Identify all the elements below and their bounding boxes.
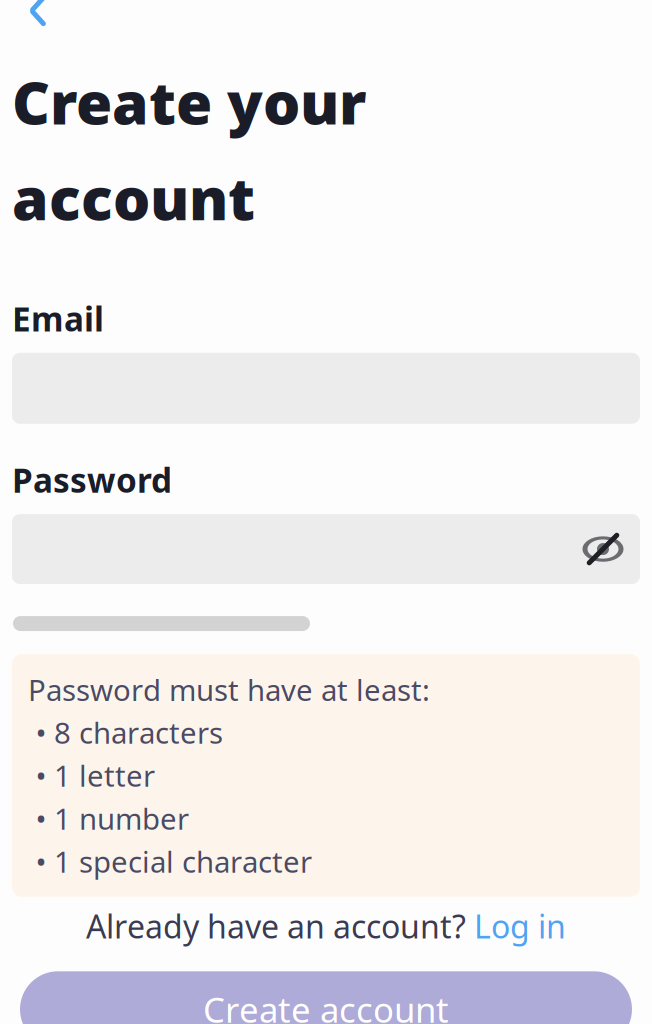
staticText: Create account: [203, 986, 449, 1024]
button[interactable]: Create account: [20, 971, 632, 1024]
staticText: •: [35, 799, 46, 838]
staticText: Email: [12, 296, 104, 341]
staticText: •: [35, 756, 46, 795]
staticText: 1 number: [54, 799, 189, 838]
staticText: Create your: [12, 63, 367, 141]
staticText: Password must have at least:: [28, 670, 430, 709]
button[interactable]: Password field: [12, 514, 640, 584]
button[interactable]: Back: [10, 0, 66, 39]
button[interactable]: Log in: [474, 905, 566, 947]
staticText: •: [35, 842, 46, 881]
staticText: 8 characters: [54, 713, 223, 752]
staticText: Log in: [474, 905, 566, 947]
button[interactable]: Show password: [574, 520, 632, 578]
staticText: Password: [12, 458, 172, 502]
staticText: 1 letter: [54, 756, 155, 795]
staticText: Already have an account?: [86, 905, 474, 947]
staticText: account: [12, 159, 255, 236]
staticText: •: [35, 713, 46, 752]
staticText: 1 special character: [54, 842, 312, 881]
